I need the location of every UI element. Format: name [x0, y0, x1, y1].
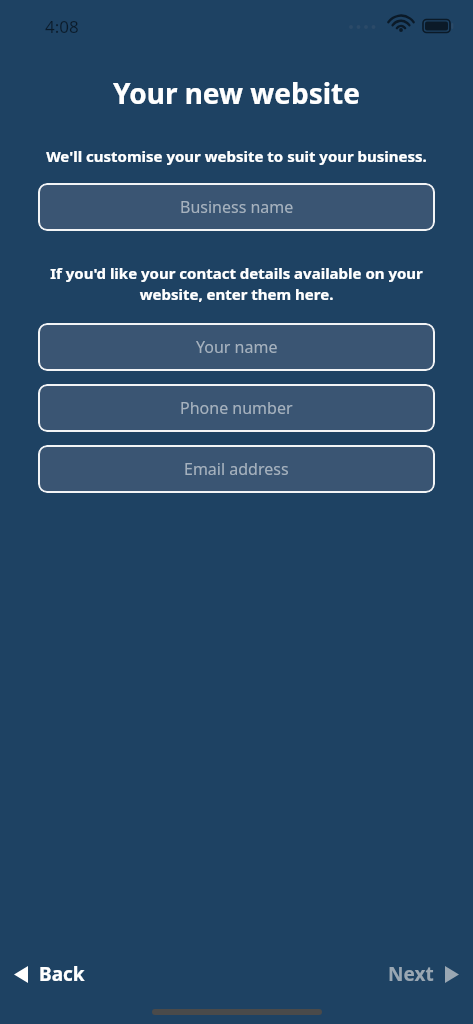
- staticText: Business name: [180, 196, 294, 218]
- button[interactable]: Next: [376, 955, 473, 993]
- staticText: 4:08: [45, 15, 79, 38]
- button[interactable]: Your name: [38, 323, 435, 371]
- staticText: Your new website: [0, 74, 473, 112]
- staticText: Your name: [196, 336, 278, 358]
- button[interactable]: Email address: [38, 445, 435, 493]
- staticText: Back: [39, 961, 85, 987]
- staticText: If you'd like your contact details avail…: [42, 263, 431, 305]
- staticText: We'll customise your website to suit you…: [24, 146, 449, 166]
- button[interactable]: Phone number: [38, 384, 435, 432]
- staticText: Email address: [184, 458, 289, 480]
- staticText: Next: [388, 961, 434, 987]
- staticText: Phone number: [180, 397, 293, 419]
- button[interactable]: Back: [0, 955, 97, 993]
- button[interactable]: Business name: [38, 183, 435, 231]
